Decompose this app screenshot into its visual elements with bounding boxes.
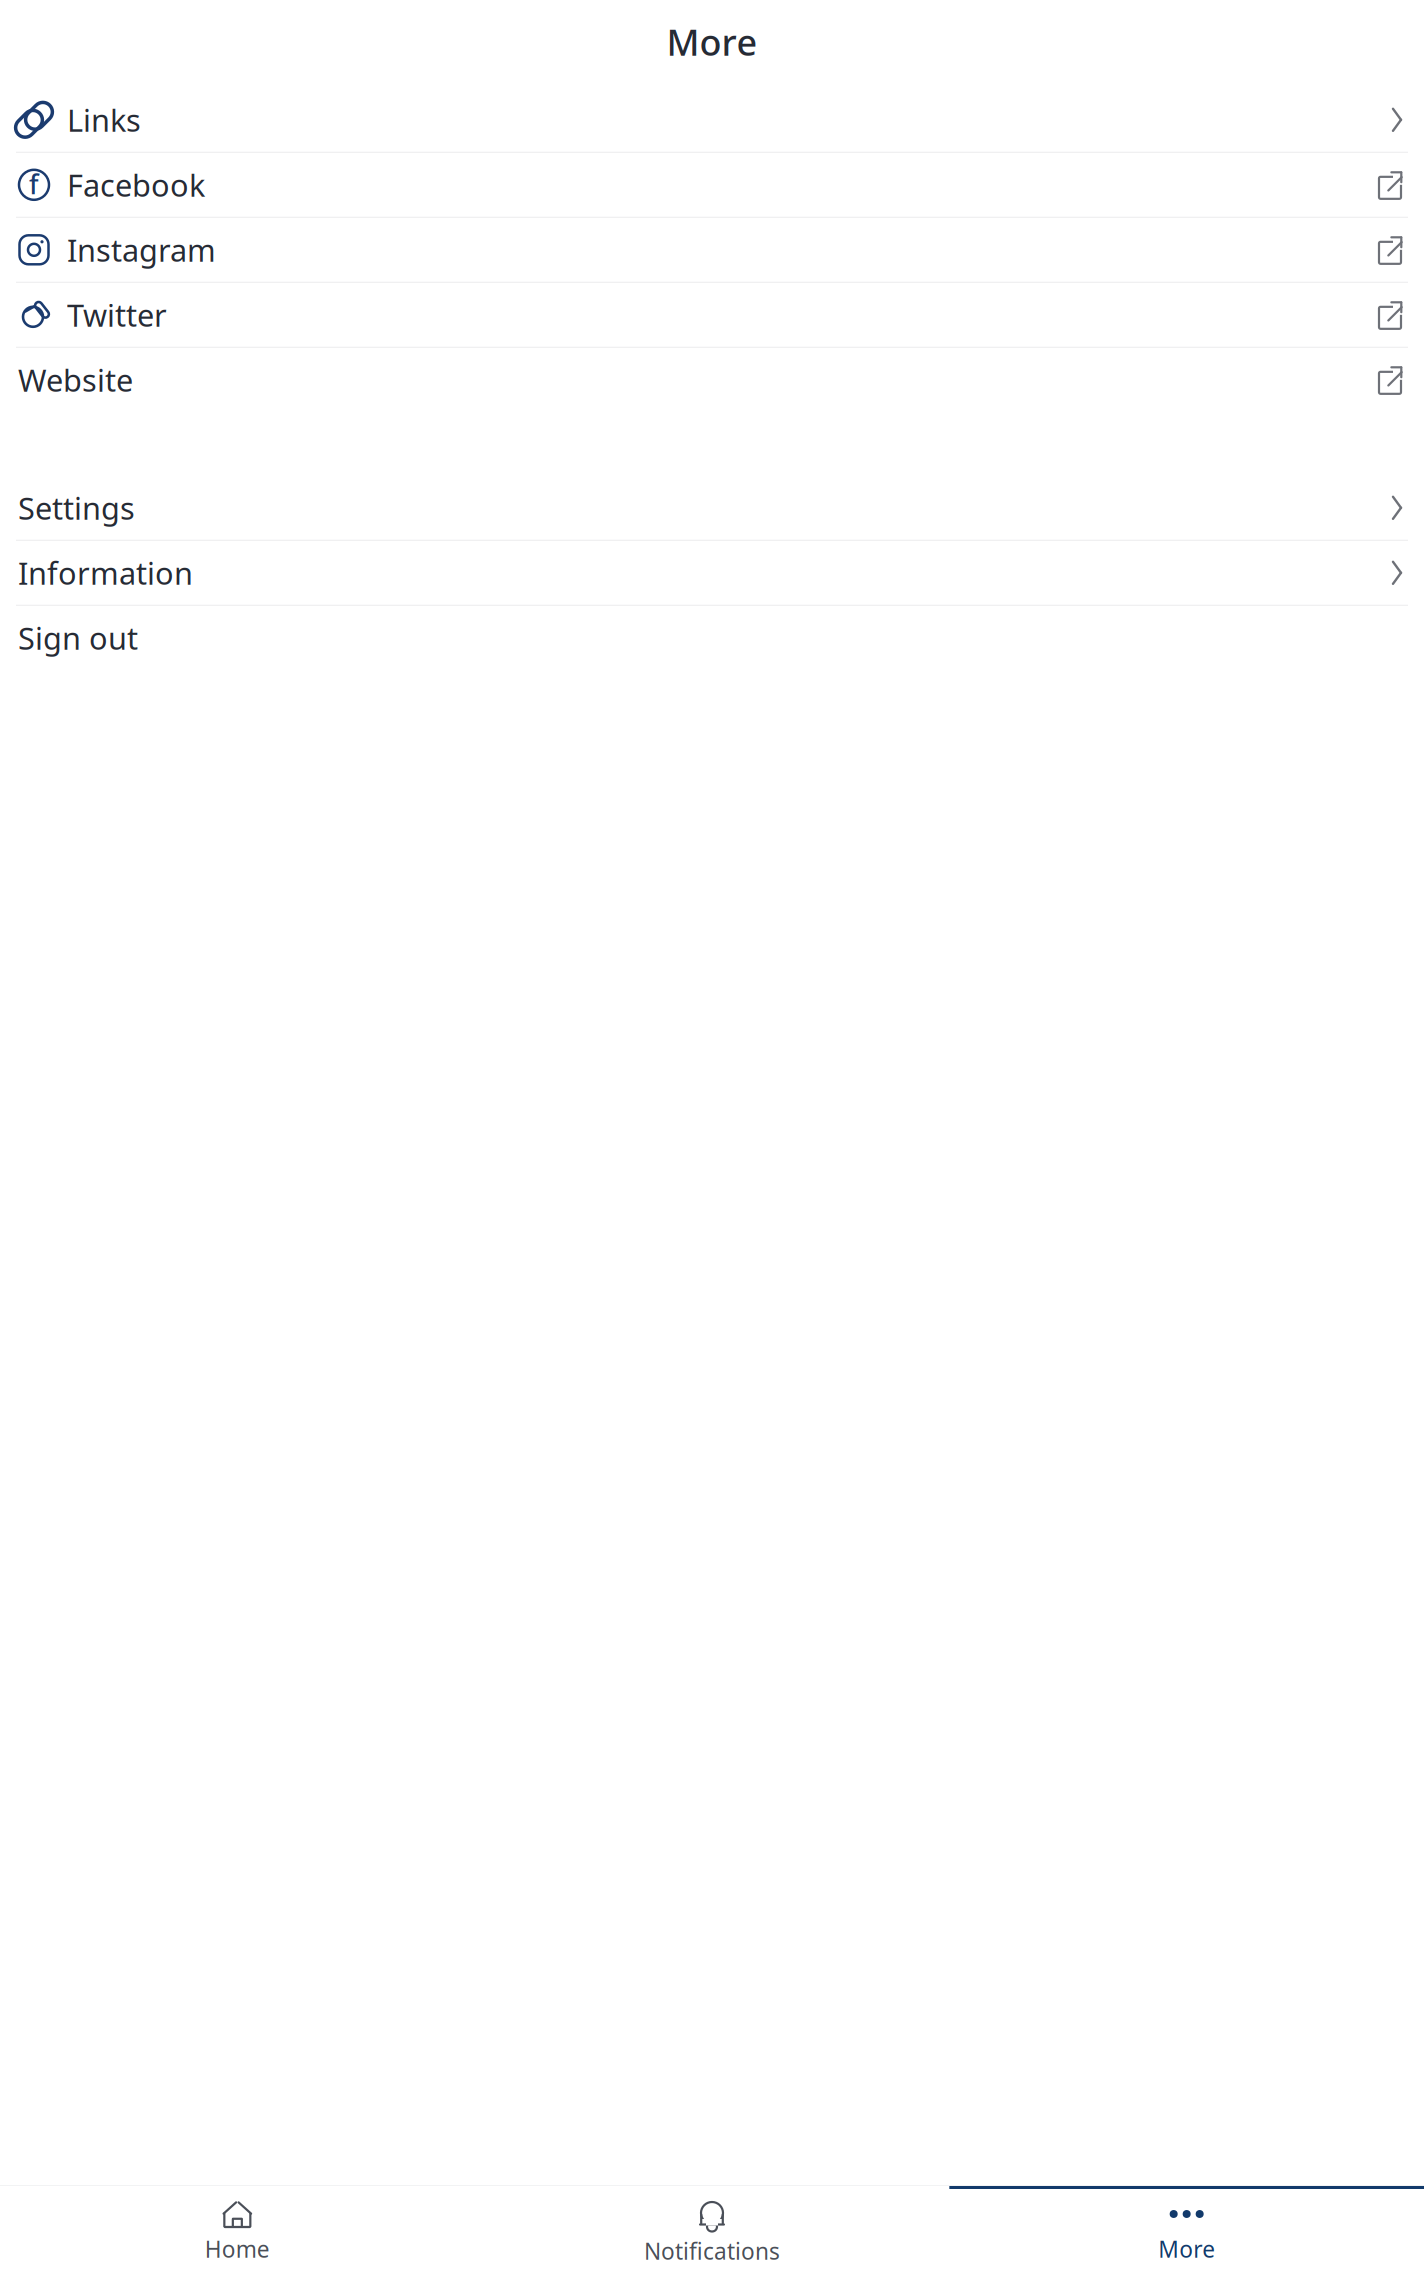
- staticText: Twitter: [67, 294, 167, 335]
- staticText: Notifications: [644, 2236, 780, 2266]
- staticText: Links: [67, 99, 141, 140]
- staticText: Facebook: [67, 164, 205, 205]
- staticText: Information: [18, 552, 193, 593]
- button[interactable]: More: [949, 2186, 1424, 2276]
- staticText: More: [666, 18, 757, 66]
- button[interactable]: Home: [0, 2186, 475, 2276]
- staticText: f: [29, 166, 39, 201]
- staticText: Website: [18, 359, 133, 400]
- staticText: Instagram: [67, 229, 216, 270]
- staticText: Sign out: [18, 617, 138, 658]
- button[interactable]: Sign out: [0, 606, 1424, 670]
- button[interactable]: f: [0, 153, 1424, 217]
- staticText: Settings: [18, 487, 135, 528]
- staticText: Home: [205, 2234, 270, 2264]
- staticText: More: [1158, 2234, 1215, 2264]
- button[interactable]: Settings: [0, 476, 1424, 540]
- button[interactable]: Links: [0, 88, 1424, 152]
- button[interactable]: Notifications: [475, 2186, 949, 2276]
- button[interactable]: Twitter: [0, 283, 1424, 347]
- button[interactable]: Information: [0, 541, 1424, 605]
- button[interactable]: Instagram: [0, 218, 1424, 282]
- button[interactable]: Website: [0, 348, 1424, 412]
